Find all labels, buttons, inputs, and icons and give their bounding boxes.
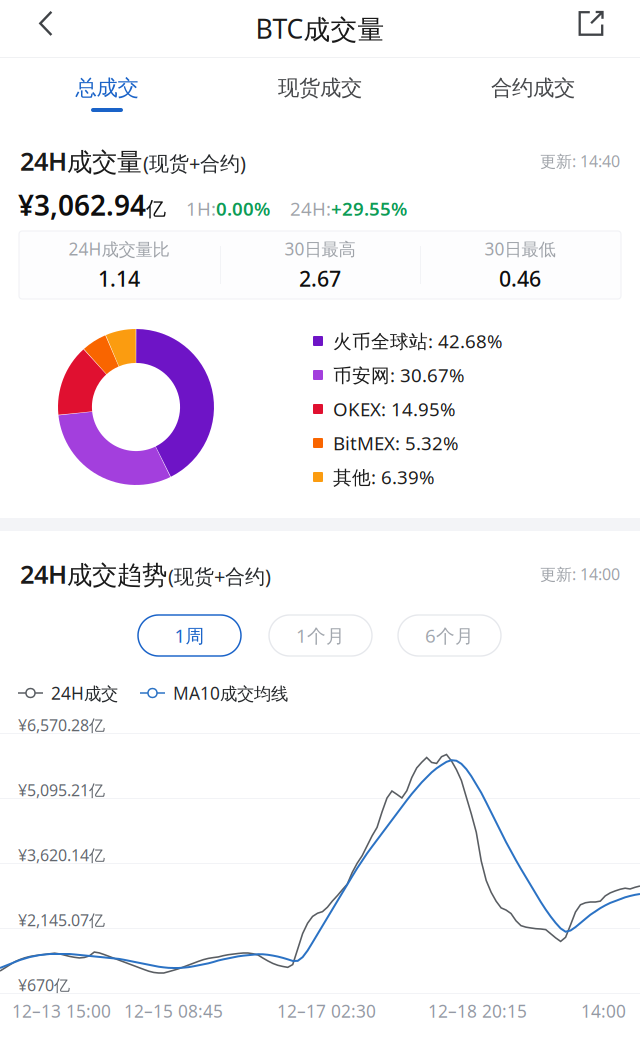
staticText: BTC成交量 <box>255 11 384 46</box>
staticText: 30日最高 <box>284 237 355 260</box>
staticText: MA10成交均线 <box>173 681 288 704</box>
button[interactable]: 返回 <box>0 0 92 52</box>
staticText: ¥3,062.94 <box>18 186 146 224</box>
staticText: 24H成交 <box>51 681 118 704</box>
staticText: 30日最低 <box>484 237 555 260</box>
button[interactable]: 6个月 <box>398 615 501 656</box>
staticText: 更新: 14:00 <box>540 563 620 585</box>
staticText: 2.67 <box>299 264 341 293</box>
staticText: 亿 <box>146 197 166 221</box>
staticText: 现货成交 <box>278 75 362 101</box>
staticText: 火币全球站: 42.68% <box>333 329 503 353</box>
staticText: BitMEX: 5.32% <box>333 431 459 455</box>
staticText: ¥6,570.28亿 <box>18 714 105 736</box>
staticText: 0.00% <box>216 196 270 221</box>
staticText: ¥670亿 <box>18 974 70 996</box>
staticText: 1H: <box>186 196 216 221</box>
button[interactable]: 1周 <box>138 615 241 656</box>
staticText: ¥3,620.14亿 <box>18 844 105 866</box>
staticText: 24H成交量比 <box>68 237 169 260</box>
staticText: 0.46 <box>499 264 541 293</box>
staticText: 12–13 15:00 <box>12 999 111 1022</box>
staticText: (现货+合约) <box>143 150 246 176</box>
staticText: 1个月 <box>296 623 345 648</box>
staticText: 币安网: 30.67% <box>333 363 465 387</box>
staticText: 14:00 <box>581 999 626 1022</box>
button[interactable]: 合约成交 <box>427 58 639 126</box>
staticText: 24H成交趋势 <box>20 557 167 591</box>
button[interactable]: 总成交 <box>1 58 213 126</box>
staticText: 更新: 14:40 <box>540 150 620 172</box>
staticText: OKEX: 14.95% <box>333 397 456 421</box>
staticText: 合约成交 <box>491 75 575 101</box>
staticText: ¥5,095.21亿 <box>18 779 105 801</box>
staticText: 1周 <box>174 623 204 648</box>
button[interactable]: 现货成交 <box>214 58 426 126</box>
staticText: 24H: <box>290 196 331 221</box>
button[interactable]: 1个月 <box>269 615 372 656</box>
staticText: 6个月 <box>425 623 474 648</box>
button[interactable]: 分享 <box>550 0 632 52</box>
staticText: +29.55% <box>331 196 407 221</box>
staticText: 12–17 02:30 <box>277 999 376 1022</box>
staticText: 12–18 20:15 <box>428 999 527 1022</box>
staticText: 1.14 <box>98 264 140 293</box>
staticText: (现货+合约) <box>168 563 271 589</box>
staticText: ¥2,145.07亿 <box>18 909 105 931</box>
staticText: 12–15 08:45 <box>124 999 223 1022</box>
staticText: 24H成交量 <box>20 144 142 178</box>
staticText: 其他: 6.39% <box>333 465 435 489</box>
staticText: 总成交 <box>75 75 138 101</box>
